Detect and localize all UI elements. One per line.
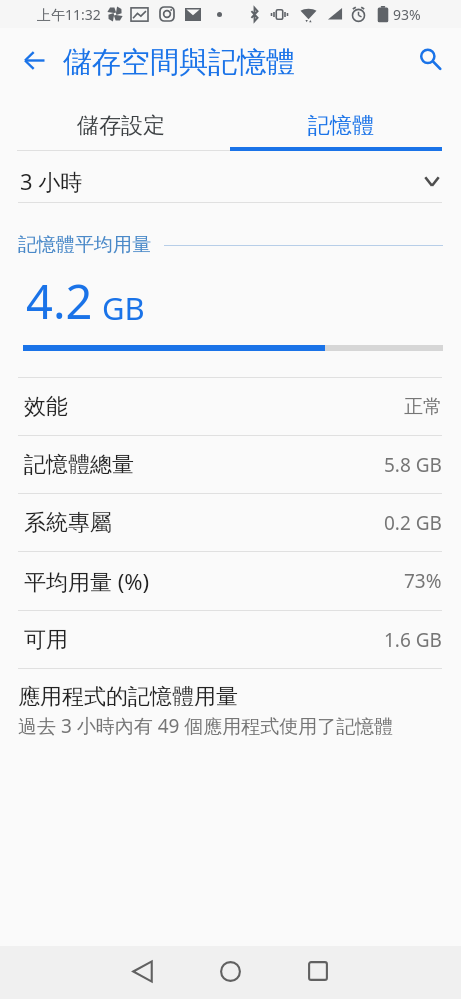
staticText: 效能 [24,393,68,421]
button[interactable]: 平均用量 (%) [0,552,461,610]
staticText: 73% [404,568,442,594]
staticText: 4.2 [26,269,93,333]
staticText: 平均用量 (%) [24,566,150,596]
button[interactable]: 系統專屬 [0,494,461,551]
staticText: 正常 [404,395,442,419]
staticText: 記憶體總量 [24,451,134,479]
staticText: 儲存設定 [77,112,165,140]
staticText: 93% [393,5,421,24]
staticText: 1.6 GB [384,627,442,653]
staticText: 3 小時 [20,166,83,196]
button[interactable]: 記憶體 [230,94,461,143]
button[interactable]: 可用 [0,611,461,668]
staticText: GB [102,287,145,329]
button[interactable]: Back [118,947,166,995]
button[interactable]: Back [13,39,56,82]
button[interactable]: 記憶體總量 [0,436,461,493]
button[interactable]: Home [206,947,254,995]
staticText: 儲存空間與記憶體 [63,44,295,81]
staticText: 5.8 GB [384,452,442,478]
staticText: 系統專屬 [24,509,112,537]
staticText: 記憶體 [308,112,374,140]
staticText: 可用 [24,626,68,654]
staticText: 過去 3 小時內有 49 個應用程式使用了記憶體 [18,713,394,739]
staticText: 0.2 GB [384,510,442,536]
button[interactable]: 應用程式的記憶體用量 [0,669,461,739]
staticText: 上午11:32 [37,5,101,24]
button[interactable]: 效能 [0,378,461,435]
button[interactable]: 儲存設定 [0,94,230,143]
button[interactable]: 3 小時 [0,147,461,202]
staticText: 記憶體平均用量 [18,233,151,257]
button[interactable]: Recents [294,947,342,995]
staticText: 應用程式的記憶體用量 [18,683,238,711]
button[interactable]: Search [410,38,452,80]
